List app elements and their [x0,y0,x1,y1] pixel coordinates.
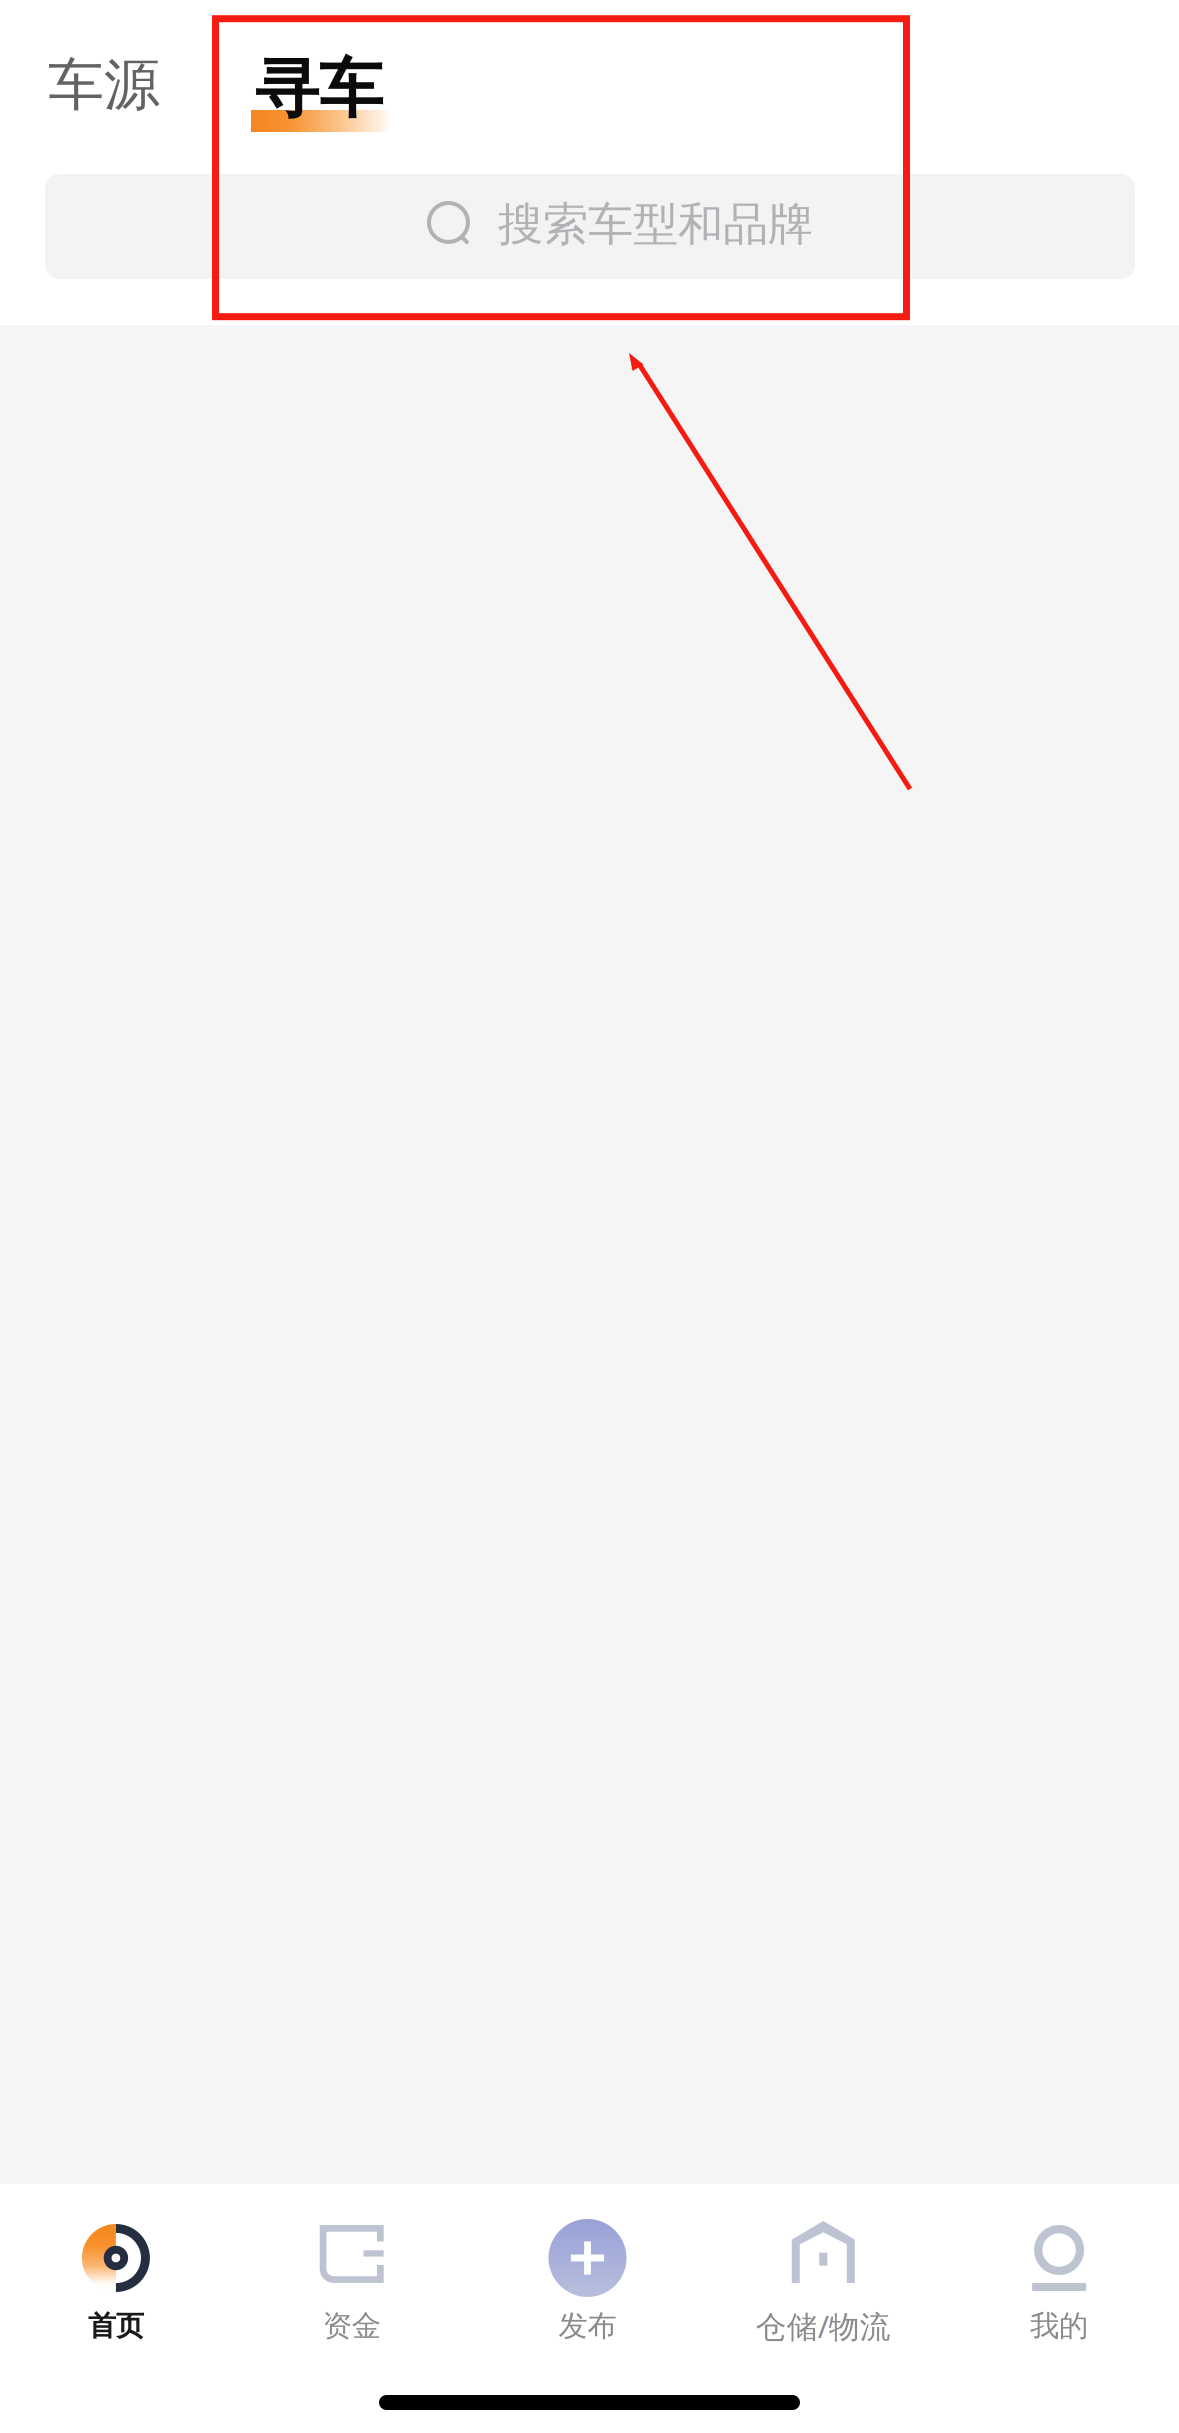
button[interactable]: 车源 [9,26,199,144]
button[interactable]: 我的 [941,2184,1177,2380]
staticText: 车源 [48,51,160,119]
button[interactable]: 寻车 [255,52,455,162]
staticText: 资金 [323,2308,381,2344]
button[interactable]: 搜索车型和品牌 [45,174,1135,279]
button[interactable]: 仓储/物流 [705,2184,941,2380]
button[interactable]: 资金 [234,2184,470,2380]
staticText: 寻车 [255,50,383,129]
staticText: 搜索车型和品牌 [498,197,813,252]
staticText: 仓储/物流 [756,2306,891,2346]
staticText: 发布 [558,2308,616,2344]
staticText: 首页 [88,2309,144,2343]
button[interactable]: 首页 [0,2184,234,2380]
button[interactable]: 发布 [470,2184,705,2380]
staticText: 我的 [1030,2308,1088,2344]
